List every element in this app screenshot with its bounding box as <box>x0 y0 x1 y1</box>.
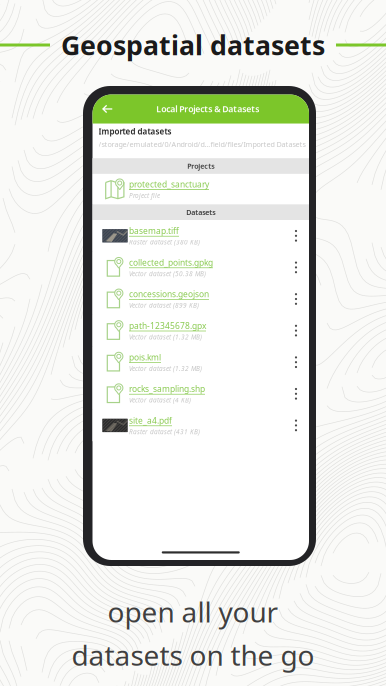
staticText: path-12345678.gpx <box>129 320 206 331</box>
staticText: Project file <box>129 191 160 200</box>
staticText: Vector dataset (4 KB) <box>129 396 191 404</box>
staticText: site_a4.pdf <box>129 415 172 426</box>
staticText: Geospatial datasets <box>61 27 325 63</box>
staticText: Vector dataset (1.32 MB) <box>129 333 202 341</box>
button[interactable]: Back <box>96 94 118 123</box>
button[interactable]: protected_sanctuary <box>92 174 309 204</box>
button[interactable]: path-12345678.gpx <box>92 315 309 346</box>
staticText: Raster dataset (380 KB) <box>129 238 200 246</box>
staticText: datasets on the go <box>71 636 314 673</box>
button[interactable]: concessions.geojson <box>92 283 309 315</box>
staticText: Raster dataset (431 KB) <box>129 427 200 436</box>
staticText: basemap.tiff <box>129 225 179 236</box>
staticText: Vector dataset (50.38 MB) <box>129 269 206 278</box>
staticText: concessions.geojson <box>129 288 209 300</box>
staticText: protected_sanctuary <box>129 178 209 190</box>
staticText: Datasets <box>186 207 215 217</box>
staticText: Vector dataset (1.32 MB) <box>129 364 202 373</box>
staticText: pois.kml <box>129 351 161 363</box>
staticText: Vector dataset (899 KB) <box>129 301 199 310</box>
staticText: Imported datasets <box>98 126 171 137</box>
staticText: /storage/emulated/0/Android/d…field/file… <box>98 139 305 149</box>
button[interactable]: pois.kml <box>92 346 309 378</box>
button[interactable]: rocks_sampling.shp <box>92 378 309 410</box>
staticText: Local Projects & Datasets <box>156 103 259 115</box>
staticText: rocks_sampling.shp <box>129 383 205 394</box>
staticText: collected_points.gpkg <box>129 257 213 268</box>
button[interactable]: site_a4.pdf <box>92 410 309 441</box>
staticText: open all your <box>107 593 278 630</box>
button[interactable]: collected_points.gpkg <box>92 252 309 283</box>
button[interactable]: basemap.tiff <box>92 220 309 252</box>
staticText: Projects <box>187 161 214 171</box>
